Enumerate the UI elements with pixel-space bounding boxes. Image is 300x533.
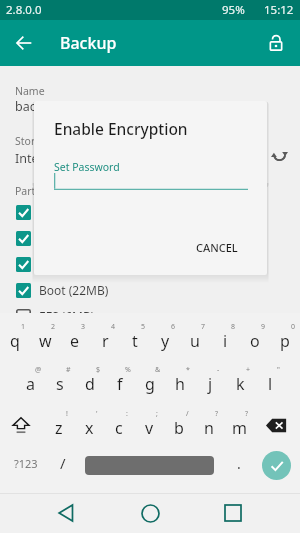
button[interactable]: Data (4.1GB) [0,225,300,251]
staticText: CANCEL [196,240,238,255]
staticText: " [277,365,280,375]
staticText: 8 [231,322,236,332]
staticText: ? [215,409,219,419]
button[interactable]: 5 [120,319,150,357]
staticText: : [126,409,128,419]
staticText: $ [96,365,101,375]
button[interactable]: ? [224,406,254,444]
button[interactable]: Cache (98MB) [0,251,300,277]
button[interactable]: ? [194,406,224,444]
button[interactable]: ?123 [4,444,48,482]
button[interactable]: 6 [150,319,180,357]
button[interactable]: Refresh [266,141,292,167]
staticText: & [155,365,161,375]
button[interactable]: " [255,362,285,400]
staticText: backup [15,98,58,115]
button[interactable]: 1 [0,319,30,357]
staticText: 9 [261,322,266,332]
button[interactable]: $ [75,362,105,400]
button[interactable]: Enter [262,451,291,480]
button[interactable]: @ [15,362,45,400]
staticText: 6 [171,322,176,332]
staticText: v [145,417,154,439]
button[interactable]: Back [47,494,85,532]
staticText: e [70,330,80,352]
staticText: * [186,365,190,375]
button[interactable]: Space [85,456,214,475]
staticText: t [132,330,138,352]
staticText: Set Password [54,160,120,174]
staticText: m [232,417,247,439]
button[interactable]: . [226,444,252,482]
button[interactable]: 7 [180,319,210,357]
staticText: a [26,373,35,395]
button[interactable]: Backspace [258,406,296,444]
button[interactable]: ! [44,406,74,444]
staticText: h [175,373,185,395]
button[interactable]: 8 [210,319,240,357]
staticText: n [204,417,214,439]
staticText: / [60,453,66,473]
staticText: # [66,365,71,375]
button[interactable]: CANCEL [187,233,247,262]
button[interactable]: 0 [270,319,300,357]
staticText: q [10,330,20,352]
staticText: Storage [15,134,54,148]
button[interactable]: / [164,406,194,444]
staticText: x [85,417,94,439]
staticText: . [237,454,241,473]
button[interactable]: EFS (6MB) [0,303,300,329]
button[interactable]: * [165,362,195,400]
button[interactable]: System (2.5GB) [0,199,300,225]
button[interactable]: Recents [214,494,252,532]
staticText: 1 [21,322,26,332]
staticText: 0 [291,322,296,332]
button[interactable]: ' [74,406,104,444]
button[interactable]: Boot (22MB) [0,277,300,303]
staticText: / [186,409,189,419]
staticText: + [246,365,251,375]
button[interactable]: Encryption [258,25,294,61]
staticText: r [102,330,109,352]
staticText: i [223,330,228,352]
staticText: u [190,330,200,352]
button[interactable]: - [195,362,225,400]
button[interactable]: # [45,362,75,400]
button[interactable]: + [225,362,255,400]
staticText: 4 [111,322,116,332]
button[interactable]: 3 [60,319,90,357]
button[interactable]: / [50,444,76,482]
staticText: p [280,330,290,352]
staticText: Internal [15,150,62,167]
button[interactable]: & [135,362,165,400]
staticText: Backup [60,32,117,54]
staticText: 2.8.0.0 [6,2,42,18]
staticText: 15:12 [264,2,294,18]
button[interactable]: 9 [240,319,270,357]
staticText: b [174,417,184,439]
staticText: ; [156,409,158,419]
staticText: Boot (22MB) [39,282,109,298]
staticText: ?123 [14,456,38,471]
staticText: l [268,373,273,395]
staticText: z [55,417,63,439]
staticText: % [125,365,131,375]
button[interactable]: Home [131,494,169,532]
staticText: s [56,373,64,395]
button[interactable]: % [105,362,135,400]
staticText: 95% [222,2,245,18]
staticText: ? [245,409,249,419]
button[interactable]: Shift [2,406,40,444]
button[interactable]: : [104,406,134,444]
button[interactable]: Back [8,20,39,66]
staticText: j [208,373,213,395]
button[interactable]: 4 [90,319,120,357]
button[interactable]: ; [134,406,164,444]
staticText: EFS (6MB) [39,308,95,324]
button[interactable]: 2 [30,319,60,357]
staticText: f [117,373,123,395]
staticText: c [115,417,123,439]
